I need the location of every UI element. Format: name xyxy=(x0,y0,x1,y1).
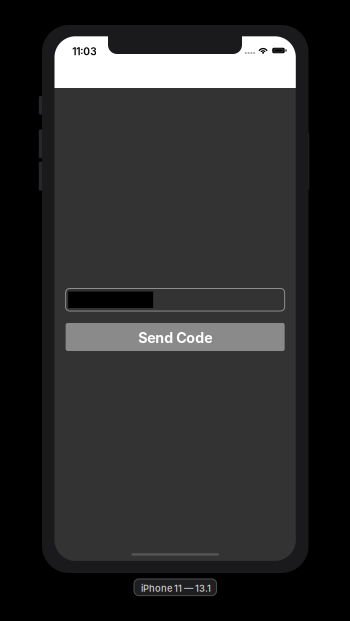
staticText: Send Code xyxy=(138,329,212,346)
staticText: iPhone 11 — 13.1 xyxy=(141,583,211,594)
staticText: 11:03 xyxy=(72,45,96,58)
button[interactable]: Send Code xyxy=(66,323,285,351)
